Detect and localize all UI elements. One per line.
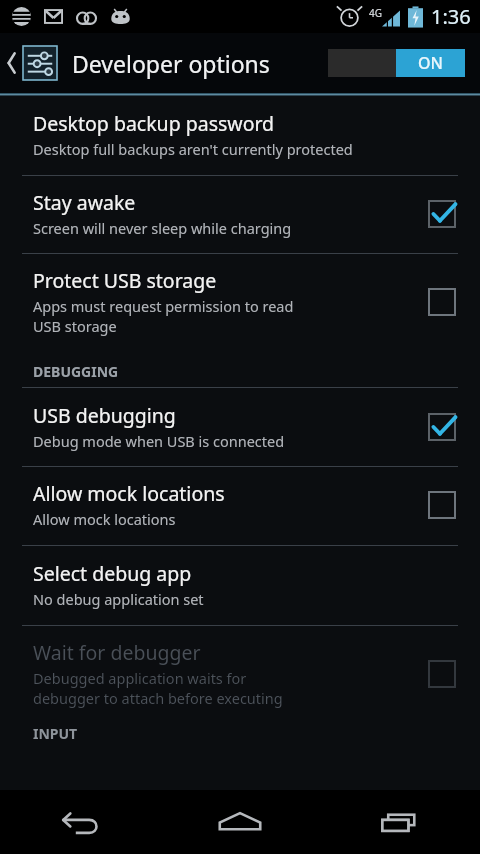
staticText: 1:36 bbox=[431, 3, 471, 30]
button[interactable]: Wait for debugger bbox=[0, 626, 480, 718]
staticText: DEBUGGING bbox=[33, 362, 119, 381]
staticText: No debug application set bbox=[33, 589, 204, 609]
staticText: Debug mode when USB is connected bbox=[33, 431, 285, 451]
staticText: Allow mock locations bbox=[33, 480, 225, 507]
button[interactable]: Unchecked bbox=[422, 282, 462, 322]
button[interactable]: Home bbox=[160, 790, 320, 854]
button[interactable]: Checked bbox=[422, 407, 462, 447]
staticText: 4G bbox=[369, 6, 382, 20]
button[interactable]: Select debug app bbox=[0, 546, 480, 625]
staticText: Allow mock locations bbox=[33, 509, 176, 529]
staticText: Stay awake bbox=[33, 189, 136, 216]
staticText: Developer options bbox=[72, 48, 270, 79]
button[interactable]: Developer options on bbox=[328, 49, 465, 77]
button[interactable]: USB debugging bbox=[0, 388, 480, 466]
button[interactable]: Recents bbox=[320, 790, 480, 854]
staticText: Desktop backup password bbox=[33, 110, 275, 137]
staticText: Debugged application waits for debugger … bbox=[33, 668, 283, 708]
staticText: ON bbox=[418, 52, 443, 74]
staticText: Select debug app bbox=[33, 560, 192, 587]
button[interactable]: Unchecked bbox=[422, 654, 462, 694]
button[interactable]: Stay awake bbox=[0, 176, 480, 253]
staticText: Apps must request permission to read USB… bbox=[33, 296, 294, 336]
button[interactable]: Desktop backup password bbox=[0, 96, 480, 175]
staticText: Wait for debugger bbox=[33, 639, 201, 666]
staticText: USB debugging bbox=[33, 402, 176, 429]
button[interactable]: Protect USB storage bbox=[0, 254, 480, 350]
staticText: Desktop full backups aren't currently pr… bbox=[33, 139, 353, 159]
button[interactable]: Allow mock locations bbox=[0, 467, 480, 545]
staticText: Protect USB storage bbox=[33, 267, 217, 294]
staticText: INPUT bbox=[33, 724, 78, 743]
button[interactable]: Checked bbox=[422, 194, 462, 234]
staticText: Screen will never sleep while charging bbox=[33, 218, 292, 238]
button[interactable]: Back bbox=[0, 790, 160, 854]
button[interactable]: Unchecked bbox=[422, 485, 462, 525]
button[interactable]: Back bbox=[0, 37, 60, 89]
